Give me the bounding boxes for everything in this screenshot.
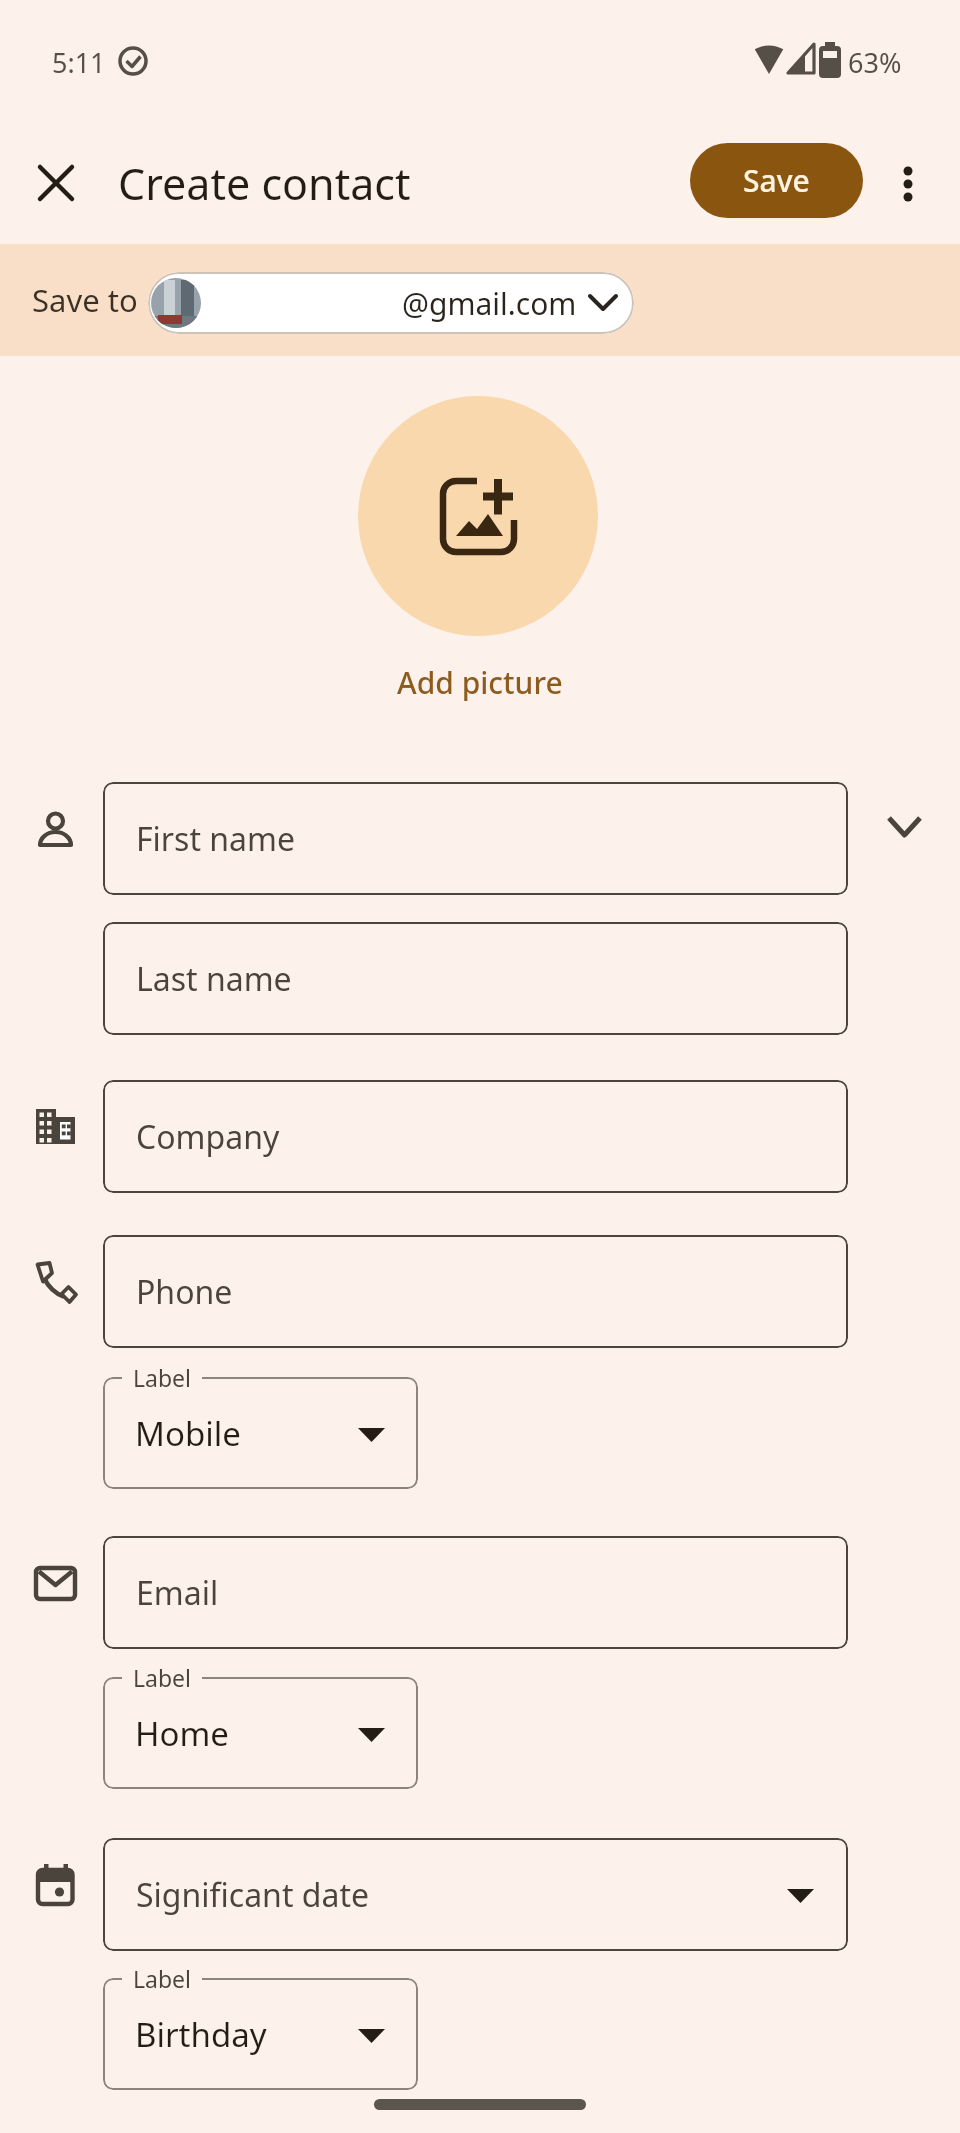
button[interactable]: Last name <box>103 922 848 1035</box>
staticText: Label <box>133 1362 192 1393</box>
button[interactable] <box>330 660 630 704</box>
button[interactable]: Home <box>103 1677 418 1789</box>
staticText: Label <box>133 1662 192 1693</box>
staticText: 5:11 <box>52 44 106 80</box>
button[interactable] <box>24 151 88 215</box>
button[interactable] <box>148 272 634 334</box>
button[interactable]: Phone <box>103 1235 848 1348</box>
staticText: @gmail.com <box>402 283 577 324</box>
button[interactable]: Birthday <box>103 1978 418 2090</box>
staticText: Company <box>136 1115 280 1159</box>
button[interactable]: Save <box>690 143 863 218</box>
button[interactable] <box>884 159 932 207</box>
staticText: Mobile <box>135 1411 241 1456</box>
staticText: Label <box>133 1963 192 1994</box>
staticText: Birthday <box>135 2012 267 2057</box>
staticText: 63% <box>848 44 902 80</box>
staticText: Create contact <box>118 154 411 213</box>
button[interactable] <box>358 396 598 636</box>
staticText: First name <box>136 817 295 861</box>
button[interactable]: First name <box>103 782 848 895</box>
button[interactable]: Mobile <box>103 1377 418 1489</box>
button[interactable] <box>876 798 932 854</box>
staticText: Home <box>135 1711 229 1756</box>
staticText: Email <box>136 1571 219 1615</box>
button[interactable]: Significant date <box>103 1838 848 1951</box>
button[interactable]: Company <box>103 1080 848 1193</box>
staticText: Save <box>743 160 810 201</box>
staticText: Save to <box>32 279 138 321</box>
staticText: Phone <box>136 1270 233 1314</box>
staticText: Significant date <box>136 1873 369 1917</box>
staticText: Last name <box>136 957 292 1001</box>
button[interactable]: Email <box>103 1536 848 1649</box>
staticText: Add picture <box>397 662 563 703</box>
